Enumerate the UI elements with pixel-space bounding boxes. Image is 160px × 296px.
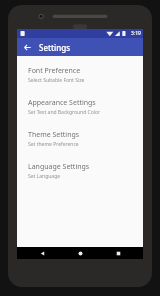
button[interactable]: Back	[20, 40, 34, 54]
button[interactable]: Language Settings	[17, 159, 143, 191]
button[interactable]: Theme Settings	[17, 127, 143, 159]
button[interactable]: Home	[67, 247, 93, 259]
staticText: Appearance Settings	[28, 98, 96, 108]
staticText: Set Language	[28, 173, 61, 180]
staticText: Settings	[39, 42, 71, 53]
staticText: Language Settings	[28, 162, 90, 172]
staticText: Font Preference	[28, 66, 81, 76]
button[interactable]: Back	[29, 247, 55, 259]
staticText: Set Text and Background Color	[28, 109, 101, 116]
button[interactable]: Appearance Settings	[17, 95, 143, 127]
staticText: Set theme Preference	[28, 141, 79, 148]
button[interactable]: Font Preference	[17, 63, 143, 95]
staticText: Select Suitable Font Size	[28, 77, 85, 84]
staticText: 3:19	[131, 30, 141, 37]
button[interactable]: Recent apps	[105, 247, 131, 259]
staticText: Theme Settings	[28, 130, 80, 140]
